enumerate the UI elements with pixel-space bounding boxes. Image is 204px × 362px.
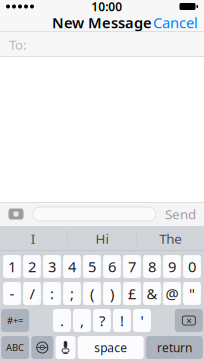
button[interactable]: 9: [163, 255, 181, 278]
button[interactable]: 7: [123, 255, 141, 278]
staticText: ×: [186, 313, 192, 328]
staticText: ABC: [6, 341, 24, 354]
button[interactable]: Next keyboard: [31, 336, 53, 359]
button[interactable]: @: [163, 282, 181, 305]
staticText: £: [128, 284, 136, 303]
button[interactable]: ;: [63, 282, 81, 305]
button[interactable]: The: [137, 226, 204, 251]
button[interactable]: &: [143, 282, 161, 305]
staticText: Hi: [95, 230, 108, 247]
button[interactable]: ,: [73, 309, 91, 332]
button[interactable]: Delete: [175, 309, 203, 332]
staticText: ?: [99, 311, 105, 330]
button[interactable]: -: [3, 282, 21, 305]
button[interactable]: To:: [0, 32, 204, 57]
staticText: ;: [70, 284, 74, 303]
staticText: !: [120, 311, 124, 330]
staticText: The: [159, 230, 182, 247]
button[interactable]: Hi: [68, 226, 136, 251]
staticText: /: [29, 284, 34, 303]
button[interactable]: /: [23, 282, 41, 305]
button[interactable]: Cancel: [147, 9, 204, 36]
staticText: (: [90, 284, 94, 303]
button[interactable]: .: [53, 309, 71, 332]
button[interactable]: £: [123, 282, 141, 305]
staticText: Send: [165, 205, 196, 223]
staticText: 1: [8, 257, 16, 276]
button[interactable]: ": [183, 282, 201, 305]
button[interactable]: ABC: [1, 336, 29, 359]
button[interactable]: space: [78, 336, 144, 359]
staticText: 0: [188, 257, 196, 276]
button[interactable]: 1: [3, 255, 21, 278]
staticText: ,: [80, 311, 84, 330]
button[interactable]: ': [133, 309, 151, 332]
staticText: 7: [128, 257, 136, 276]
staticText: -: [9, 284, 14, 303]
staticText: To:: [9, 36, 27, 53]
staticText: ': [140, 311, 143, 330]
staticText: 2: [28, 257, 36, 276]
staticText: ): [110, 284, 114, 303]
staticText: &: [146, 284, 157, 303]
staticText: #+=: [7, 314, 23, 327]
button[interactable]: Dictate: [55, 336, 75, 359]
button[interactable]: 2: [23, 255, 41, 278]
staticText: I: [31, 230, 36, 247]
button[interactable]: 8: [143, 255, 161, 278]
staticText: New Message: [52, 13, 152, 32]
button[interactable]: 4: [63, 255, 81, 278]
staticText: 10:00: [91, 0, 122, 14]
button[interactable]: (: [83, 282, 101, 305]
button[interactable]: I: [0, 226, 67, 251]
button[interactable]: Take photo or video: [6, 205, 26, 223]
staticText: 6: [108, 257, 116, 276]
staticText: 4: [68, 257, 76, 276]
staticText: @: [165, 284, 178, 303]
button[interactable]: !: [113, 309, 131, 332]
button[interactable]: 0: [183, 255, 201, 278]
staticText: ": [189, 284, 195, 303]
button[interactable]: Send: [163, 205, 198, 223]
staticText: 8: [148, 257, 156, 276]
staticText: 9: [168, 257, 176, 276]
staticText: 3: [48, 257, 56, 276]
button[interactable]: 5: [83, 255, 101, 278]
staticText: 5: [88, 257, 96, 276]
button[interactable]: 3: [43, 255, 61, 278]
staticText: Cancel: [153, 13, 198, 32]
button[interactable]: 6: [103, 255, 121, 278]
button[interactable]: return: [146, 336, 203, 359]
staticText: return: [157, 339, 192, 355]
staticText: .: [60, 311, 64, 330]
button[interactable]: ): [103, 282, 121, 305]
staticText: :: [50, 284, 54, 303]
button[interactable]: #+=: [1, 309, 29, 332]
button[interactable]: :: [43, 282, 61, 305]
button[interactable]: ?: [93, 309, 111, 332]
staticText: space: [94, 339, 127, 355]
